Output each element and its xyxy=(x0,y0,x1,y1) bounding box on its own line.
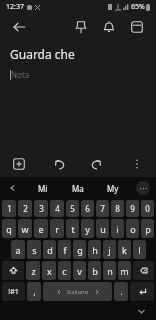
staticText: x xyxy=(47,265,52,277)
staticText: 8 xyxy=(115,203,120,214)
staticText: e xyxy=(38,223,44,235)
button[interactable]: q xyxy=(2,219,16,238)
button[interactable]: n xyxy=(103,261,116,280)
button[interactable]: y xyxy=(81,219,94,238)
button[interactable]: k xyxy=(118,240,131,259)
staticText: 65% xyxy=(131,2,145,12)
button[interactable]: o xyxy=(126,219,139,238)
button[interactable]: 8 xyxy=(111,200,124,217)
button[interactable]: Undo xyxy=(49,153,71,175)
button[interactable]: z xyxy=(26,261,40,280)
staticText: 2 xyxy=(23,203,28,214)
button[interactable]: Mi xyxy=(26,177,60,199)
button[interactable]: Previous suggestions xyxy=(0,177,26,199)
staticText: r xyxy=(55,223,59,235)
button[interactable]: a xyxy=(11,240,25,259)
button[interactable]: f xyxy=(58,240,71,259)
staticText: m xyxy=(120,265,129,277)
staticText: My xyxy=(107,183,119,194)
staticText: 1 xyxy=(7,203,12,214)
staticText: Italiano xyxy=(67,288,89,296)
staticText: i xyxy=(116,223,119,235)
staticText: 7 xyxy=(100,203,105,214)
button[interactable]: 4 xyxy=(50,200,64,217)
button[interactable]: Enter xyxy=(130,282,154,301)
button[interactable]: s xyxy=(27,240,41,259)
button[interactable]: Archive xyxy=(126,16,148,38)
staticText: f xyxy=(63,244,67,256)
staticText: b xyxy=(92,265,98,277)
button[interactable]: Italiano xyxy=(43,282,112,301)
staticText: !#1 xyxy=(8,287,19,297)
button[interactable]: My xyxy=(95,177,130,199)
staticText: , xyxy=(33,286,36,297)
staticText: h xyxy=(92,244,98,256)
button[interactable]: More options xyxy=(126,153,148,175)
button[interactable]: r xyxy=(50,219,64,238)
button[interactable]: 3 xyxy=(34,200,48,217)
staticText: y xyxy=(85,223,90,235)
button[interactable]: Redo xyxy=(85,153,107,175)
button[interactable]: 2 xyxy=(18,200,32,217)
staticText: 3 xyxy=(39,203,44,214)
staticText: g xyxy=(77,244,83,256)
staticText: a xyxy=(15,244,21,256)
button[interactable]: More suggestions xyxy=(130,177,156,199)
staticText: o xyxy=(130,223,136,235)
button[interactable]: 5 xyxy=(66,200,79,217)
button[interactable]: v xyxy=(73,261,86,280)
button[interactable]: b xyxy=(88,261,101,280)
staticText: 5 xyxy=(70,203,75,214)
staticText: Ma xyxy=(72,183,84,194)
staticText: 4 xyxy=(55,203,60,214)
button[interactable]: h xyxy=(88,240,101,259)
button[interactable]: Reminder xyxy=(98,16,120,38)
button[interactable]: l xyxy=(133,240,146,259)
button[interactable]: Backspace xyxy=(133,261,154,280)
button[interactable]: m xyxy=(118,261,131,280)
button[interactable]: !#1 xyxy=(2,282,25,301)
button[interactable]: i xyxy=(111,219,124,238)
button[interactable]: 9 xyxy=(126,200,139,217)
staticText: 0 xyxy=(145,203,150,214)
staticText: d xyxy=(47,244,53,256)
button[interactable]: j xyxy=(103,240,116,259)
button[interactable]: Back xyxy=(8,16,30,38)
button[interactable]: Add item xyxy=(8,153,30,175)
staticText: u xyxy=(100,223,106,235)
button[interactable]: p xyxy=(141,219,154,238)
staticText: t xyxy=(71,223,75,235)
button[interactable]: 1 xyxy=(2,200,16,217)
staticText: q xyxy=(6,223,12,235)
staticText: l xyxy=(138,244,141,256)
button[interactable]: x xyxy=(42,261,56,280)
staticText: Nota xyxy=(11,69,30,80)
staticText: k xyxy=(122,244,127,256)
button[interactable]: w xyxy=(18,219,32,238)
button[interactable]: 7 xyxy=(96,200,109,217)
button[interactable]: , xyxy=(27,282,41,301)
staticText: 6 xyxy=(85,203,90,214)
button[interactable]: Hide keyboard xyxy=(126,302,156,320)
staticText: s xyxy=(32,244,37,256)
button[interactable]: t xyxy=(66,219,79,238)
button[interactable]: c xyxy=(58,261,71,280)
staticText: z xyxy=(31,265,36,277)
button[interactable]: Shift xyxy=(2,261,24,280)
button[interactable]: 0 xyxy=(141,200,154,217)
button[interactable]: d xyxy=(43,240,56,259)
staticText: j xyxy=(108,244,111,256)
button[interactable]: . xyxy=(114,282,128,301)
staticText: Mi xyxy=(38,183,48,194)
button[interactable]: u xyxy=(96,219,109,238)
staticText: w xyxy=(21,223,29,235)
button[interactable]: e xyxy=(34,219,48,238)
staticText: Guarda che xyxy=(10,46,75,62)
button[interactable]: Pin xyxy=(70,16,92,38)
button[interactable]: 6 xyxy=(81,200,94,217)
staticText: n xyxy=(107,265,113,277)
staticText: v xyxy=(77,265,82,277)
button[interactable]: g xyxy=(73,240,86,259)
button[interactable]: Ma xyxy=(60,177,95,199)
staticText: p xyxy=(145,223,151,235)
